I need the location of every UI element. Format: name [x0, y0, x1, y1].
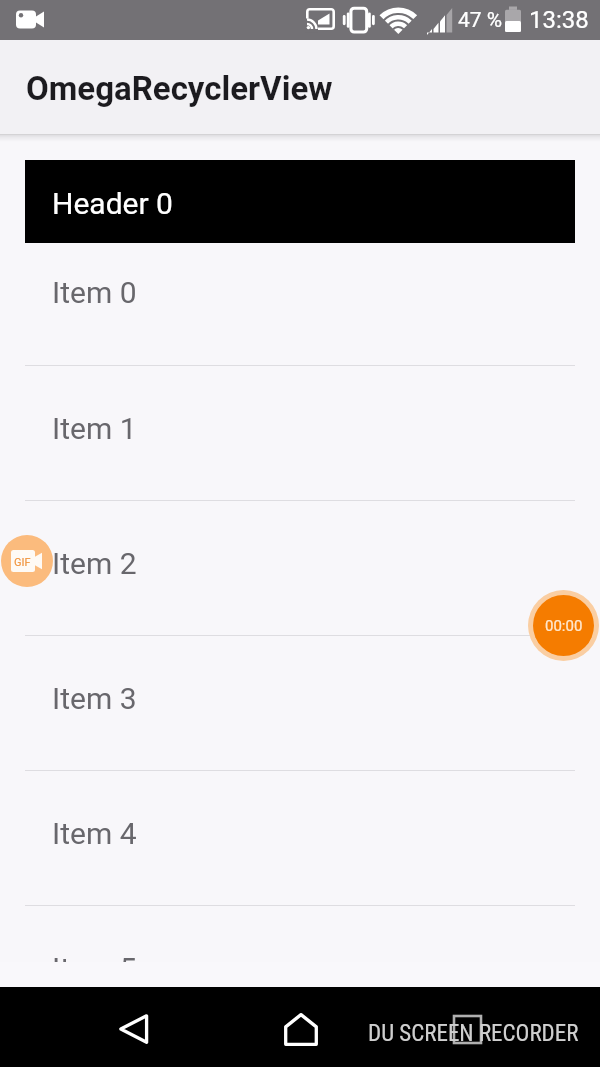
staticText: Item 5 — [52, 951, 137, 962]
staticText: 00:00 — [545, 617, 583, 635]
staticText: Item 1 — [52, 411, 137, 446]
button[interactable]: Home — [279, 1007, 323, 1051]
staticText: GIF — [14, 556, 31, 569]
button[interactable]: Item 1 — [0, 366, 600, 501]
staticText: OmegaRecyclerView — [26, 69, 333, 108]
staticText: Item 0 — [52, 275, 137, 310]
button[interactable]: Header 0 — [25, 160, 575, 243]
staticText: Header 0 — [52, 186, 173, 221]
staticText: 47 % — [458, 8, 503, 33]
button[interactable]: Item 4 — [0, 771, 600, 906]
button[interactable]: Item 2 — [0, 501, 600, 636]
button[interactable]: Item 5 — [0, 906, 600, 962]
button[interactable]: Recording timer — [528, 590, 599, 661]
button[interactable]: Item 0 — [0, 243, 600, 366]
staticText: DU SCREEN RECORDER — [368, 1020, 579, 1047]
button[interactable]: Recent apps — [449, 1011, 486, 1048]
button[interactable]: GIF recording — [1, 535, 53, 587]
button[interactable]: Back — [112, 1007, 156, 1051]
staticText: Item 3 — [52, 681, 137, 716]
button[interactable]: Item 3 — [0, 636, 600, 771]
staticText: 13:38 — [529, 6, 589, 34]
staticText: Item 2 — [52, 546, 137, 581]
staticText: Item 4 — [52, 816, 137, 851]
